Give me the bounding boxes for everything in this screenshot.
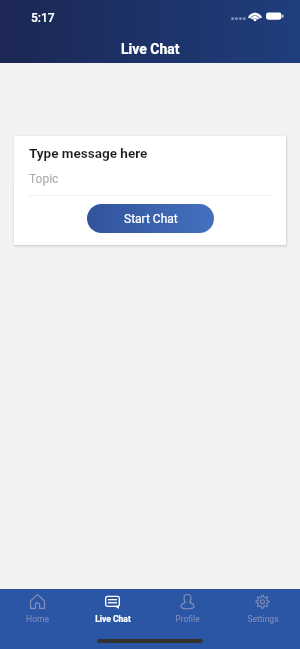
button[interactable]: Start Chat [87,204,214,233]
staticText: Live Chat [121,41,180,57]
button[interactable]: Topic [29,167,271,196]
staticText: 5:17 [31,11,55,25]
staticText: Topic [29,172,59,186]
button[interactable]: Profile [150,589,225,649]
staticText: Live Chat [95,614,131,624]
staticText: Home [26,614,49,624]
button[interactable]: Home [0,589,75,649]
staticText: Start Chat [124,212,178,226]
staticText: Type message here [29,145,148,161]
button[interactable]: Settings [225,589,300,649]
button[interactable]: Live Chat [75,589,150,649]
staticText: Profile [175,614,200,624]
staticText: Settings [247,614,279,624]
